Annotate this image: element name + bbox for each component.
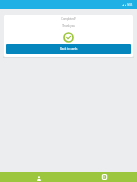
staticText: 9:05 <box>127 3 133 7</box>
staticText: Thank you <box>62 24 75 28</box>
staticText: Back to cards <box>60 47 78 51</box>
button[interactable]: Back to cards <box>6 44 131 54</box>
button[interactable]: Cards <box>70 172 137 182</box>
button[interactable]: Profile <box>0 172 70 182</box>
staticText: Completed? <box>61 17 76 21</box>
